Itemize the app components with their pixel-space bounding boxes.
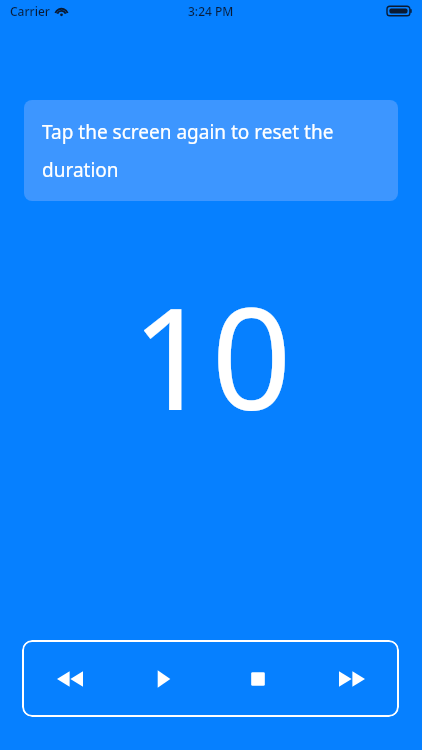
button[interactable]: Stop: [211, 640, 305, 717]
staticText: Carrier: [10, 3, 50, 19]
button[interactable]: Tap the screen again to reset the durati…: [24, 100, 398, 201]
button[interactable]: Carrier: [0, 0, 422, 750]
staticText: Tap the screen again to reset the durati…: [42, 119, 384, 182]
staticText: 10: [131, 260, 292, 451]
button[interactable]: Play: [117, 640, 211, 717]
button[interactable]: Rewind: [22, 640, 117, 717]
staticText: 3:24 PM: [188, 3, 234, 19]
button[interactable]: Fast forward: [305, 640, 399, 717]
